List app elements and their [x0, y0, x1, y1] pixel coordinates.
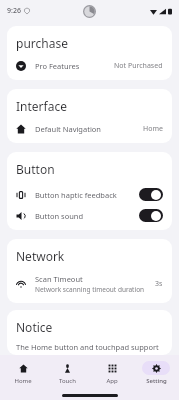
button[interactable]: Button sound	[7, 205, 172, 226]
button[interactable]: Scan Timeout	[7, 271, 172, 297]
staticText: Not Purchased	[114, 61, 163, 71]
staticText: Button haptic feedback	[35, 190, 139, 200]
staticText: purchase	[16, 35, 68, 51]
button[interactable]: Toggle on	[139, 209, 163, 222]
staticText: Home	[143, 124, 163, 134]
staticText: Button	[16, 161, 55, 177]
button[interactable]: Button haptic feedback	[7, 184, 172, 205]
staticText: Notice	[16, 319, 53, 335]
staticText: Home	[14, 377, 32, 385]
button[interactable]: App	[90, 360, 134, 386]
staticText: Network	[16, 248, 65, 264]
staticText: Default Navigation	[35, 124, 102, 134]
staticText: Scan Timeout	[35, 274, 83, 284]
staticText: The Home button and touchpad support lon…	[16, 342, 163, 355]
staticText: Interface	[16, 98, 67, 114]
staticText: Pro Features	[35, 61, 80, 71]
staticText: 3s	[155, 279, 163, 289]
button[interactable]: Setting	[134, 360, 178, 386]
button[interactable]: Default Navigation	[7, 121, 172, 137]
staticText: Touch	[59, 377, 76, 385]
staticText: Setting	[146, 377, 167, 385]
other: Setting	[152, 364, 161, 373]
button[interactable]: Toggle on	[139, 188, 163, 201]
other: Home	[19, 364, 28, 373]
other: App	[108, 364, 117, 373]
staticText: Button sound	[35, 211, 139, 221]
staticText: 9:26	[7, 6, 21, 16]
staticText: App	[106, 377, 118, 385]
button[interactable]: Home	[1, 360, 45, 386]
staticText: Network scanning timeout duration	[35, 285, 145, 294]
button[interactable]: Pro Features	[7, 58, 172, 74]
button[interactable]: Touch	[45, 360, 89, 386]
other: Touch	[63, 364, 72, 373]
